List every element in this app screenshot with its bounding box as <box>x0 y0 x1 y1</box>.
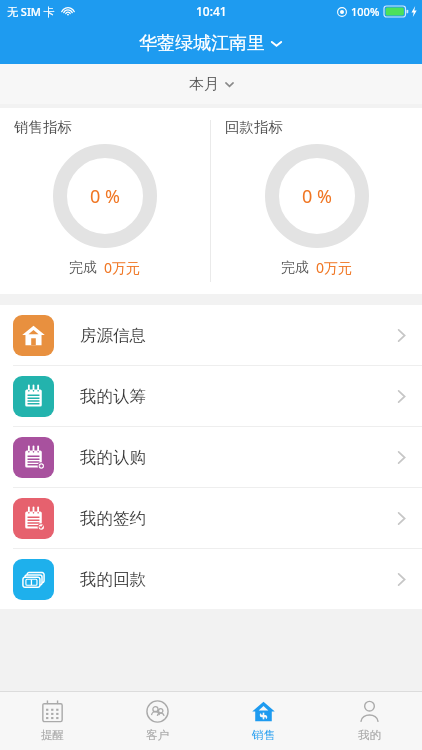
staticText: 本月 <box>189 75 219 94</box>
staticText: 我的认筹 <box>80 386 146 407</box>
staticText: 完成 <box>281 259 309 277</box>
staticText: 我的签约 <box>80 508 146 529</box>
staticText: 100% <box>351 4 380 19</box>
staticText: 我的 <box>358 728 381 742</box>
staticText: 我的回款 <box>80 569 146 590</box>
staticText: 销售 <box>252 728 275 742</box>
staticText: 10:41 <box>196 3 227 19</box>
staticText: 0万元 <box>104 258 141 277</box>
staticText: 回款指标 <box>225 118 283 136</box>
button[interactable]: 房源信息 <box>0 305 422 365</box>
staticText: 客户 <box>146 728 169 742</box>
button[interactable]: 客户 <box>105 692 210 750</box>
button[interactable]: 提醒 <box>0 692 105 750</box>
staticText: 我的认购 <box>80 447 146 468</box>
staticText: 房源信息 <box>80 325 146 346</box>
button[interactable]: 我的 <box>316 692 422 750</box>
staticText: 0万元 <box>316 258 353 277</box>
staticText: 无 SIM 卡 <box>7 4 55 19</box>
staticText: 提醒 <box>41 728 64 742</box>
button[interactable]: 我的回款 <box>0 549 422 609</box>
button[interactable]: 我的认购 <box>0 427 422 487</box>
staticText: 0 % <box>302 184 332 209</box>
button[interactable]: 我的认筹 <box>0 366 422 426</box>
staticText: 0 % <box>90 184 120 209</box>
button[interactable]: 我的签约 <box>0 488 422 548</box>
staticText: 完成 <box>69 259 97 277</box>
button[interactable]: 本月 <box>175 70 248 99</box>
button[interactable]: 华蓥绿城江南里 <box>129 28 293 59</box>
button[interactable]: 销售 <box>210 692 316 750</box>
staticText: 华蓥绿城江南里 <box>139 32 265 55</box>
staticText: 销售指标 <box>14 118 72 136</box>
